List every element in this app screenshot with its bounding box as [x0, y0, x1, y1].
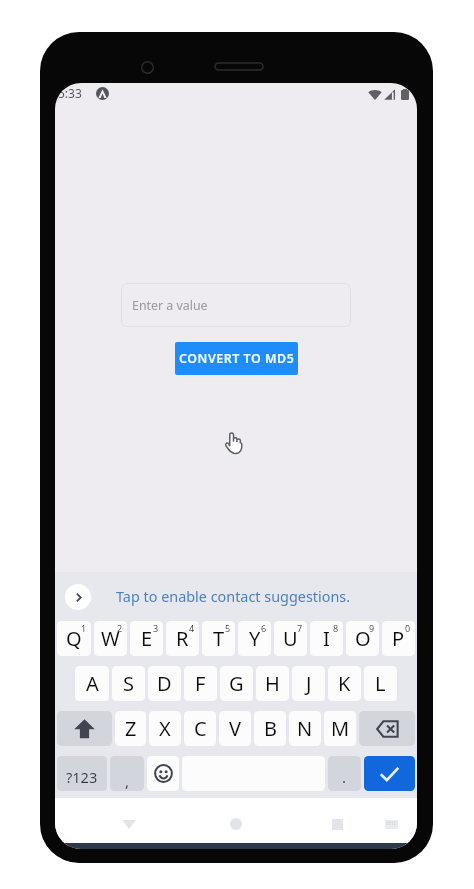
staticText: Q: [66, 625, 82, 652]
staticText: E: [141, 625, 153, 652]
button[interactable]: J: [292, 666, 325, 701]
button[interactable]: E: [130, 621, 163, 656]
button[interactable]: Expand suggestions: [65, 584, 91, 610]
staticText: C: [194, 715, 207, 742]
staticText: I: [323, 625, 330, 652]
button[interactable]: A: [75, 666, 109, 701]
staticText: 5:33: [58, 85, 82, 101]
button[interactable]: Recents: [327, 814, 347, 834]
button[interactable]: CONVERT TO MD5: [175, 342, 298, 375]
button[interactable]: K: [328, 666, 361, 701]
button[interactable]: R: [166, 621, 199, 656]
button[interactable]: Emoji: [147, 756, 179, 791]
staticText: A: [86, 670, 99, 697]
button[interactable]: C: [184, 711, 216, 746]
button[interactable]: G: [220, 666, 253, 701]
button[interactable]: Tap to enable contact suggestions.: [116, 587, 351, 607]
staticText: CONVERT TO MD5: [179, 350, 295, 367]
staticText: 6: [261, 622, 267, 634]
button[interactable]: T: [202, 621, 235, 656]
staticText: 2: [117, 622, 123, 634]
button[interactable]: U: [274, 621, 307, 656]
staticText: L: [375, 670, 386, 697]
button[interactable]: Hide keyboard: [382, 815, 400, 833]
button[interactable]: Z: [115, 711, 146, 746]
button[interactable]: Enter a value: [121, 283, 351, 327]
staticText: S: [123, 670, 134, 697]
button[interactable]: Shift: [57, 711, 112, 746]
staticText: F: [195, 670, 206, 697]
button[interactable]: V: [219, 711, 251, 746]
staticText: 8: [333, 622, 339, 634]
staticText: W: [101, 625, 120, 652]
staticText: T: [213, 625, 225, 652]
staticText: N: [297, 715, 313, 742]
staticText: D: [157, 670, 172, 697]
button[interactable]: P: [382, 621, 415, 656]
button[interactable]: F: [184, 666, 217, 701]
button[interactable]: Enter: [364, 756, 415, 791]
button[interactable]: W: [94, 621, 127, 656]
button[interactable]: ?123: [57, 756, 107, 791]
staticText: U: [283, 625, 298, 652]
staticText: J: [306, 670, 312, 697]
staticText: 9: [369, 622, 375, 634]
staticText: ,: [125, 771, 130, 791]
staticText: 3: [153, 622, 159, 634]
button[interactable]: S: [112, 666, 145, 701]
staticText: G: [229, 670, 244, 697]
button[interactable]: Home: [226, 814, 246, 834]
staticText: K: [338, 670, 351, 697]
staticText: 4: [189, 622, 195, 634]
button[interactable]: ,: [110, 756, 144, 791]
staticText: 5: [225, 622, 231, 634]
staticText: 1: [81, 622, 87, 634]
button[interactable]: Back: [119, 814, 139, 834]
staticText: H: [265, 670, 280, 697]
button[interactable]: O: [346, 621, 379, 656]
button[interactable]: H: [256, 666, 289, 701]
button[interactable]: M: [324, 711, 356, 746]
button[interactable]: I: [310, 621, 343, 656]
staticText: V: [229, 715, 241, 742]
staticText: Z: [125, 715, 137, 742]
button[interactable]: N: [289, 711, 321, 746]
button[interactable]: D: [148, 666, 181, 701]
button[interactable]: X: [149, 711, 181, 746]
staticText: B: [264, 715, 277, 742]
staticText: X: [159, 715, 171, 742]
button[interactable]: Q: [57, 621, 91, 656]
staticText: M: [331, 715, 350, 742]
staticText: .: [342, 767, 347, 787]
button[interactable]: B: [254, 711, 286, 746]
staticText: 7: [297, 622, 303, 634]
staticText: Enter a value: [132, 297, 208, 314]
button[interactable]: .: [328, 756, 361, 791]
staticText: 0: [405, 622, 411, 634]
staticText: ?123: [66, 767, 98, 787]
staticText: P: [392, 625, 405, 652]
staticText: O: [355, 625, 371, 652]
staticText: R: [176, 625, 189, 652]
staticText: Y: [249, 625, 261, 652]
button[interactable]: Backspace: [359, 711, 415, 746]
button[interactable]: Y: [238, 621, 271, 656]
button[interactable]: L: [364, 666, 397, 701]
